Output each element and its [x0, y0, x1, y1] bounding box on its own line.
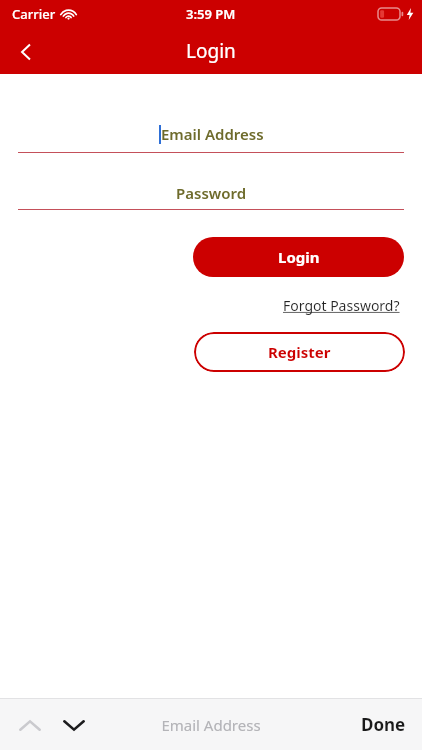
staticText: 3:59 PM	[186, 5, 236, 23]
button[interactable]: Forgot Password?	[283, 296, 400, 315]
button[interactable]: Register	[194, 332, 405, 372]
button[interactable]: Back	[4, 30, 48, 74]
staticText: Login	[278, 247, 320, 267]
staticText: Carrier	[12, 5, 56, 23]
staticText: Login	[186, 38, 236, 64]
button[interactable]: Next field	[52, 703, 96, 747]
staticText: Password	[176, 183, 247, 203]
staticText: Email Address	[161, 124, 264, 144]
button[interactable]: Previous field	[8, 703, 52, 747]
staticText: Done	[361, 713, 406, 736]
staticText: Email Address	[161, 715, 261, 735]
staticText: Register	[268, 342, 331, 362]
button[interactable]: Email Address	[0, 119, 422, 148]
button[interactable]: Login	[193, 237, 404, 277]
staticText: Forgot Password?	[283, 296, 400, 315]
button[interactable]: Done	[361, 713, 406, 736]
button[interactable]: Password	[0, 179, 422, 206]
